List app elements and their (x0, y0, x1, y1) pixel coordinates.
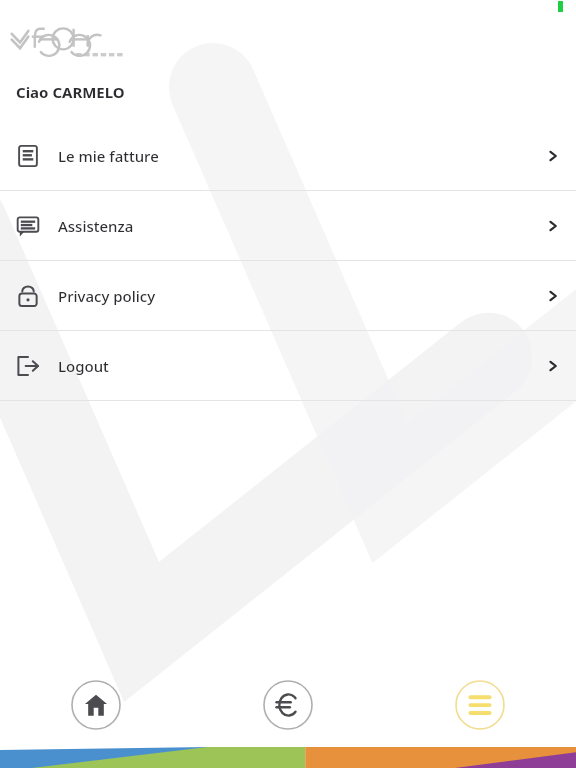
button[interactable]: Le mie fatture (0, 121, 576, 190)
button[interactable]: Logout (0, 331, 576, 400)
staticText: Le mie fatture (58, 146, 159, 166)
staticText: Logout (58, 356, 109, 376)
staticText: Assistenza (58, 216, 134, 236)
staticText: Ciao CARMELO (16, 82, 125, 102)
button[interactable]: Menu (455, 680, 505, 730)
button[interactable]: Privacy policy (0, 261, 576, 330)
staticText: Privacy policy (58, 286, 156, 306)
button[interactable]: Home (71, 680, 121, 730)
button[interactable]: Assistenza (0, 191, 576, 260)
button[interactable]: Payments (263, 680, 313, 730)
